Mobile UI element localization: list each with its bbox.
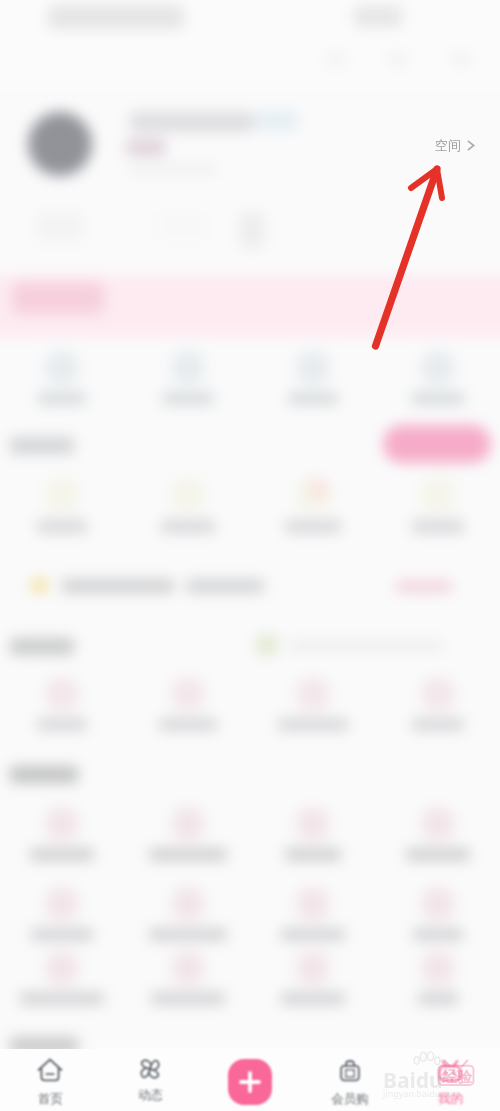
staticText: jingyan.baidu.com	[383, 1087, 461, 1099]
staticText: 空间	[435, 137, 461, 153]
button[interactable]	[143, 808, 233, 861]
button[interactable]	[393, 678, 483, 731]
button[interactable]	[17, 478, 107, 533]
button[interactable]	[143, 478, 233, 533]
button[interactable]	[17, 888, 107, 941]
button[interactable]	[17, 678, 107, 731]
staticText: 动态	[138, 1087, 163, 1103]
button[interactable]	[393, 478, 483, 533]
button[interactable]	[393, 352, 483, 405]
button[interactable]	[17, 952, 107, 1005]
button[interactable]	[17, 808, 107, 861]
staticText: 首页	[38, 1091, 63, 1107]
button[interactable]	[17, 352, 107, 405]
button[interactable]	[268, 952, 358, 1005]
button[interactable]	[393, 888, 483, 941]
staticText: 会员购	[331, 1091, 369, 1107]
button[interactable]: 空间	[433, 135, 479, 155]
button[interactable]	[143, 678, 233, 731]
staticText: 我的	[438, 1091, 463, 1107]
button[interactable]	[268, 678, 358, 731]
button[interactable]: 我的	[414, 1058, 486, 1108]
button[interactable]: 动态	[114, 1058, 186, 1108]
staticText: 经验	[442, 1068, 472, 1087]
button[interactable]	[268, 888, 358, 941]
button[interactable]	[268, 808, 358, 861]
button[interactable]: Create post	[228, 1059, 272, 1105]
button[interactable]	[143, 352, 233, 405]
button[interactable]	[143, 888, 233, 941]
button[interactable]	[268, 352, 358, 405]
button[interactable]: 首页	[14, 1058, 86, 1108]
button[interactable]: 会员购	[314, 1058, 386, 1108]
staticText: Baidu	[383, 1066, 443, 1095]
button[interactable]	[143, 952, 233, 1005]
button[interactable]	[393, 952, 483, 1005]
button[interactable]	[268, 478, 358, 533]
button[interactable]	[393, 808, 483, 861]
